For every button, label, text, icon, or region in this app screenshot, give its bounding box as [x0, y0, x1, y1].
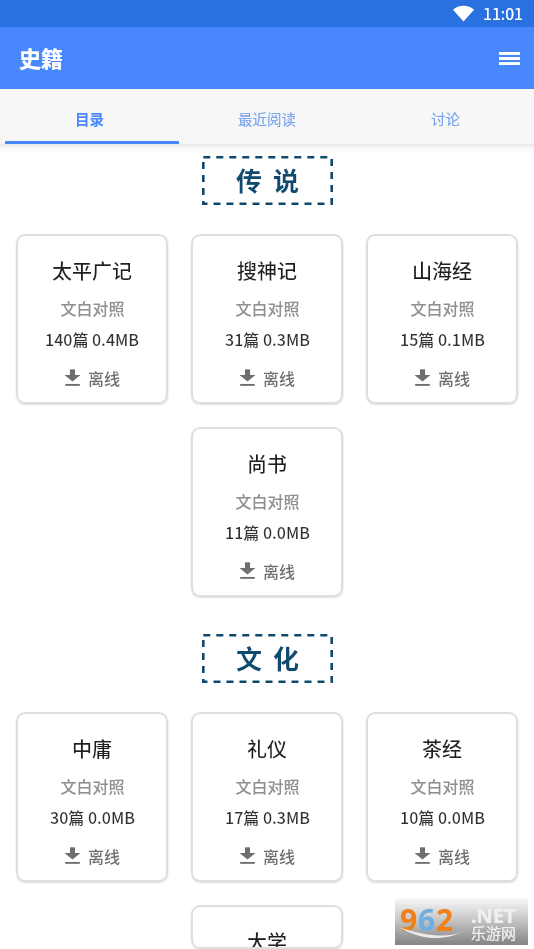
- staticText: .NET: [471, 902, 516, 929]
- staticText: 6: [418, 899, 436, 940]
- staticText: 11篇 0.0MB: [225, 520, 310, 543]
- button[interactable]: 太平广记: [16, 234, 168, 404]
- staticText: 文白对照: [235, 296, 300, 319]
- staticText: 茶经: [422, 734, 462, 763]
- button[interactable]: 大学: [191, 905, 343, 949]
- button[interactable]: 中庸: [16, 712, 168, 882]
- button[interactable]: 礼仪: [191, 712, 343, 882]
- staticText: 17篇 0.3MB: [225, 805, 310, 828]
- staticText: 传 说: [236, 161, 302, 199]
- staticText: 文白对照: [235, 489, 300, 512]
- staticText: 离线: [263, 559, 296, 582]
- staticText: 文白对照: [235, 774, 300, 797]
- staticText: 离线: [438, 366, 471, 389]
- button[interactable]: Menu: [487, 36, 531, 80]
- staticText: 中庸: [72, 734, 112, 763]
- button[interactable]: 最近阅读: [178, 89, 356, 144]
- staticText: 山海经: [412, 256, 472, 285]
- staticText: 9: [400, 899, 418, 940]
- staticText: 30篇 0.0MB: [50, 805, 135, 828]
- staticText: 最近阅读: [238, 108, 296, 129]
- staticText: 史籍: [19, 41, 64, 73]
- staticText: 太平广记: [52, 256, 132, 285]
- staticText: 11:01: [483, 1, 523, 24]
- staticText: 离线: [88, 844, 121, 867]
- staticText: 乐游网: [471, 922, 517, 944]
- staticText: 目录: [75, 108, 104, 129]
- button[interactable]: 尚书: [191, 427, 343, 597]
- button[interactable]: 茶经: [366, 712, 518, 882]
- button[interactable]: 搜神记: [191, 234, 343, 404]
- staticText: 文白对照: [410, 774, 475, 797]
- staticText: 离线: [263, 366, 296, 389]
- staticText: 140篇 0.4MB: [45, 327, 139, 350]
- staticText: 文白对照: [410, 296, 475, 319]
- staticText: 尚书: [247, 449, 287, 478]
- staticText: 文白对照: [60, 296, 125, 319]
- staticText: 讨论: [431, 108, 460, 129]
- staticText: 离线: [88, 366, 121, 389]
- staticText: 31篇 0.3MB: [225, 327, 310, 350]
- button[interactable]: 山海经: [366, 234, 518, 404]
- button[interactable]: 目录: [0, 89, 178, 144]
- staticText: 15篇 0.1MB: [400, 327, 485, 350]
- button[interactable]: 讨论: [356, 89, 534, 144]
- staticText: 文 化: [236, 639, 302, 677]
- staticText: 10篇 0.0MB: [400, 805, 485, 828]
- staticText: 离线: [263, 844, 296, 867]
- staticText: 2: [436, 899, 454, 940]
- staticText: 搜神记: [237, 256, 297, 285]
- staticText: 离线: [438, 844, 471, 867]
- staticText: 礼仪: [247, 734, 287, 763]
- staticText: 文白对照: [60, 774, 125, 797]
- staticText: 大学: [247, 927, 287, 949]
